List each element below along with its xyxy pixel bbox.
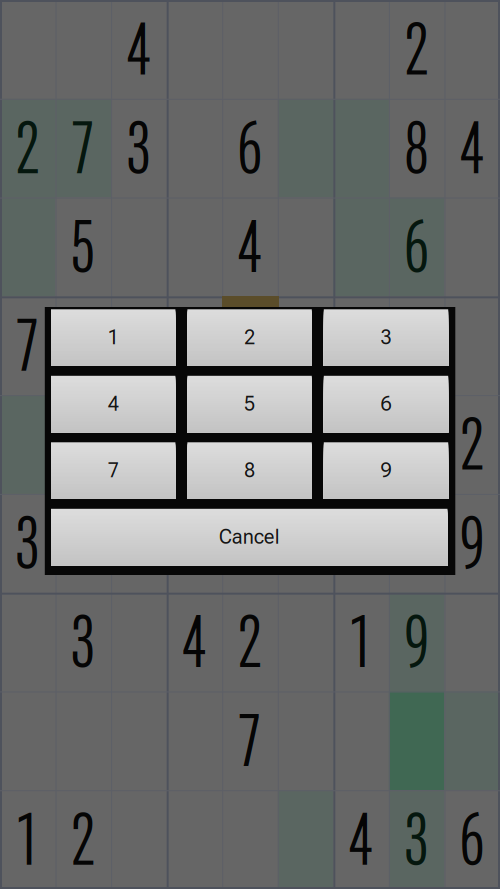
button[interactable]: 4: [167, 593, 222, 691]
staticText: 2: [405, 6, 429, 92]
button[interactable]: empty cell: [222, 395, 278, 494]
button[interactable]: empty cell: [278, 593, 333, 691]
button[interactable]: 2: [56, 790, 111, 889]
button[interactable]: empty cell: [333, 395, 389, 494]
button[interactable]: 7: [51, 442, 175, 499]
button[interactable]: empty cell: [333, 198, 389, 296]
button[interactable]: 5: [187, 376, 312, 432]
button[interactable]: empty cell: [333, 691, 389, 790]
button[interactable]: 4: [333, 790, 389, 889]
button[interactable]: 1: [0, 790, 56, 889]
button[interactable]: empty cell: [444, 593, 500, 691]
button[interactable]: 8: [389, 99, 444, 198]
button[interactable]: 2: [187, 309, 312, 366]
button[interactable]: empty cell: [56, 296, 111, 395]
button[interactable]: 6: [222, 99, 278, 198]
button[interactable]: empty cell: [389, 691, 444, 790]
staticText: 3: [405, 797, 429, 882]
button[interactable]: 9: [324, 442, 448, 499]
button[interactable]: empty cell: [444, 691, 500, 790]
button[interactable]: empty cell: [222, 296, 278, 395]
button[interactable]: 8: [187, 442, 312, 499]
staticText: 4: [238, 204, 262, 290]
button[interactable]: empty cell: [222, 494, 278, 593]
button[interactable]: empty cell: [278, 494, 333, 593]
button[interactable]: 6: [444, 790, 500, 889]
button[interactable]: empty cell: [444, 0, 500, 99]
button[interactable]: empty cell: [444, 296, 500, 395]
button[interactable]: 4: [111, 0, 167, 99]
button[interactable]: empty cell: [56, 0, 111, 99]
button[interactable]: Cancel: [51, 509, 447, 565]
button[interactable]: empty cell: [167, 296, 222, 395]
button[interactable]: empty cell: [167, 494, 222, 593]
button[interactable]: 2: [222, 593, 278, 691]
button[interactable]: empty cell: [278, 0, 333, 99]
button[interactable]: 3: [56, 593, 111, 691]
button[interactable]: empty cell: [444, 198, 500, 296]
button[interactable]: empty cell: [167, 395, 222, 494]
button[interactable]: empty cell: [389, 395, 444, 494]
button[interactable]: empty cell: [111, 395, 167, 494]
button[interactable]: 9: [389, 593, 444, 691]
button[interactable]: empty cell: [333, 99, 389, 198]
button[interactable]: 1: [333, 593, 389, 691]
button[interactable]: 6: [389, 198, 444, 296]
button[interactable]: 3: [0, 494, 56, 593]
button[interactable]: empty cell: [222, 790, 278, 889]
button[interactable]: empty cell: [0, 0, 56, 99]
button[interactable]: 2: [0, 99, 56, 198]
button[interactable]: empty cell: [167, 198, 222, 296]
button[interactable]: 6: [324, 376, 448, 432]
staticText: 9: [460, 500, 484, 586]
button[interactable]: empty cell: [0, 691, 56, 790]
staticText: 2: [16, 105, 40, 191]
staticText: 4: [460, 105, 484, 191]
button[interactable]: 7: [222, 691, 278, 790]
button[interactable]: empty cell: [111, 494, 167, 593]
button[interactable]: 4: [51, 376, 175, 432]
button[interactable]: empty cell: [167, 0, 222, 99]
button[interactable]: 5: [56, 198, 111, 296]
button[interactable]: empty cell: [111, 296, 167, 395]
button[interactable]: empty cell: [167, 691, 222, 790]
button[interactable]: empty cell: [167, 99, 222, 198]
button[interactable]: empty cell: [333, 494, 389, 593]
button[interactable]: empty cell: [222, 0, 278, 99]
button[interactable]: empty cell: [389, 494, 444, 593]
staticText: 2: [460, 401, 484, 487]
button[interactable]: empty cell: [56, 395, 111, 494]
button[interactable]: 2: [389, 0, 444, 99]
staticText: 4: [127, 6, 151, 92]
button[interactable]: 7: [0, 296, 56, 395]
button[interactable]: 2: [444, 395, 500, 494]
button[interactable]: 3: [111, 99, 167, 198]
button[interactable]: empty cell: [0, 198, 56, 296]
button[interactable]: empty cell: [111, 790, 167, 889]
button[interactable]: empty cell: [389, 296, 444, 395]
button[interactable]: empty cell: [333, 296, 389, 395]
button[interactable]: 1: [51, 309, 175, 366]
button[interactable]: empty cell: [278, 296, 333, 395]
button[interactable]: empty cell: [111, 593, 167, 691]
button[interactable]: empty cell: [56, 494, 111, 593]
staticText: 7: [16, 303, 40, 389]
button[interactable]: 4: [444, 99, 500, 198]
button[interactable]: empty cell: [0, 395, 56, 494]
button[interactable]: 3: [389, 790, 444, 889]
button[interactable]: empty cell: [333, 0, 389, 99]
button[interactable]: empty cell: [167, 790, 222, 889]
button[interactable]: 9: [444, 494, 500, 593]
button[interactable]: 4: [222, 198, 278, 296]
button[interactable]: empty cell: [278, 395, 333, 494]
button[interactable]: empty cell: [0, 593, 56, 691]
button[interactable]: 3: [324, 309, 448, 366]
button[interactable]: 7: [56, 99, 111, 198]
